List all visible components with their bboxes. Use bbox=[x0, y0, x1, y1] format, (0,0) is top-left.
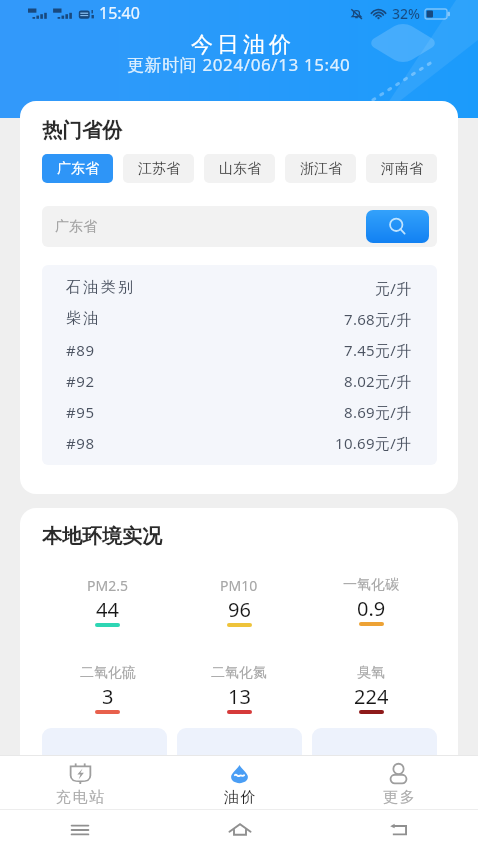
staticText: 二氧化硫 bbox=[80, 664, 136, 682]
staticText: 河南省 bbox=[381, 160, 423, 178]
staticText: 13 bbox=[228, 683, 251, 710]
button[interactable]: 更多 bbox=[319, 756, 478, 809]
staticText: 32% bbox=[392, 4, 420, 23]
staticText: 热门省份 bbox=[42, 118, 122, 143]
button[interactable]: 浙江省 bbox=[285, 154, 356, 183]
button[interactable] bbox=[312, 728, 437, 772]
staticText: 3 bbox=[102, 683, 114, 710]
staticText: 8.69元/升 bbox=[344, 402, 412, 422]
staticText: 本地环境实况 bbox=[42, 524, 162, 549]
staticText: 山东省 bbox=[219, 160, 261, 178]
staticText: 7.68元/升 bbox=[344, 309, 412, 329]
staticText: #92 bbox=[66, 371, 95, 391]
staticText: 广东省 bbox=[55, 218, 97, 236]
staticText: #98 bbox=[66, 433, 95, 453]
staticText: 油价 bbox=[224, 788, 258, 807]
button[interactable]: Home bbox=[160, 810, 319, 850]
staticText: 柴油 bbox=[66, 309, 101, 328]
staticText: 10.69元/升 bbox=[335, 433, 412, 453]
staticText: 15:40 bbox=[99, 2, 140, 24]
button[interactable]: 山东省 bbox=[204, 154, 275, 183]
button[interactable]: 油价 bbox=[160, 756, 319, 809]
staticText: 充电站 bbox=[56, 788, 107, 807]
staticText: 更新时间 2024/06/13 15:40 bbox=[127, 53, 351, 76]
staticText: 更多 bbox=[383, 788, 417, 807]
button[interactable] bbox=[42, 728, 167, 772]
staticText: 二氧化氮 bbox=[211, 664, 267, 682]
staticText: 石油类别 bbox=[66, 278, 136, 297]
staticText: 44 bbox=[96, 596, 119, 623]
staticText: 江苏省 bbox=[138, 160, 180, 178]
staticText: 224 bbox=[354, 683, 389, 710]
staticText: 臭氧 bbox=[357, 664, 385, 682]
staticText: 元/升 bbox=[375, 278, 412, 298]
button[interactable]: 搜索 bbox=[366, 210, 429, 243]
button[interactable]: Back bbox=[319, 810, 478, 850]
staticText: 7.45元/升 bbox=[344, 340, 412, 360]
staticText: #89 bbox=[66, 340, 95, 360]
button[interactable]: Recents bbox=[0, 810, 160, 850]
staticText: 浙江省 bbox=[300, 160, 342, 178]
staticText: 0.9 bbox=[357, 595, 386, 622]
button[interactable]: 广东省 bbox=[42, 154, 113, 183]
button[interactable] bbox=[177, 728, 302, 772]
staticText: PM2.5 bbox=[87, 576, 128, 595]
button[interactable]: 充电站 bbox=[0, 756, 160, 809]
staticText: #95 bbox=[66, 402, 95, 422]
staticText: 96 bbox=[228, 596, 251, 623]
button[interactable]: 河南省 bbox=[366, 154, 437, 183]
staticText: 8.02元/升 bbox=[344, 371, 412, 391]
staticText: 广东省 bbox=[57, 160, 99, 178]
staticText: 今日油价 bbox=[189, 31, 293, 59]
staticText: 一氧化碳 bbox=[343, 576, 399, 594]
button[interactable]: 江苏省 bbox=[123, 154, 194, 183]
staticText: PM10 bbox=[220, 576, 258, 595]
